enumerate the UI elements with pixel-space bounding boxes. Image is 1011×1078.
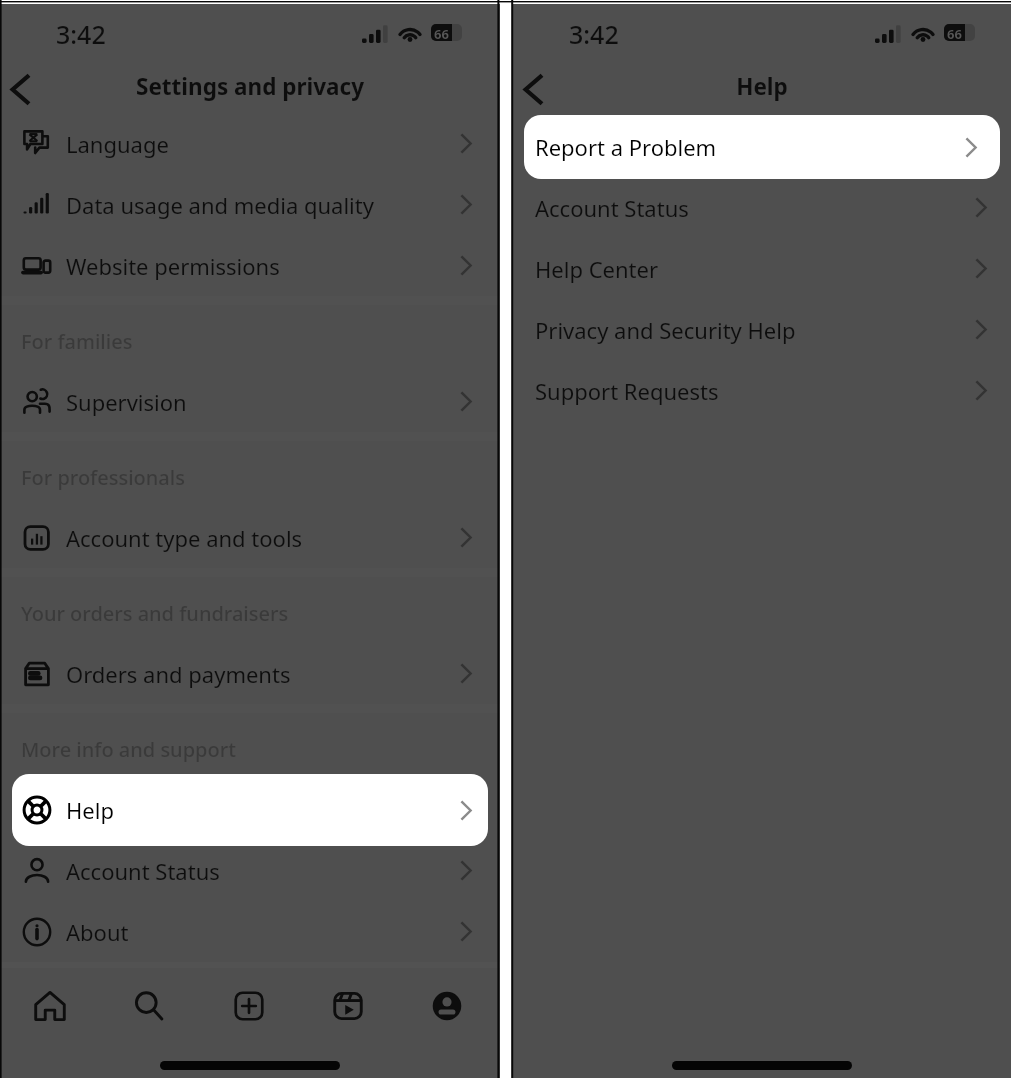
staticText: Language xyxy=(66,129,169,159)
staticText: Help xyxy=(513,71,1011,102)
button[interactable]: Orders and payments xyxy=(0,643,500,704)
button[interactable]: Search xyxy=(121,974,177,1038)
staticText: For professionals xyxy=(21,464,185,491)
staticText: Privacy and Security Help xyxy=(535,315,796,345)
button[interactable]: Report a Problem xyxy=(524,115,1000,179)
button[interactable]: Help Center xyxy=(513,238,1011,299)
staticText: Supervision xyxy=(66,387,187,417)
staticText: Orders and payments xyxy=(66,659,291,689)
button[interactable]: Back xyxy=(512,65,554,113)
button[interactable]: Help xyxy=(12,774,488,846)
staticText: 66 xyxy=(434,25,449,43)
staticText: For families xyxy=(21,328,133,355)
staticText: Settings and privacy xyxy=(0,71,500,102)
button[interactable]: Privacy and Security Help xyxy=(513,299,1011,360)
button[interactable]: Supervision xyxy=(0,371,500,432)
button[interactable]: Create xyxy=(221,974,277,1038)
button[interactable]: Language xyxy=(0,113,500,174)
button[interactable]: Reels xyxy=(320,974,376,1038)
button[interactable]: Back xyxy=(0,65,41,113)
button[interactable]: Data usage and media quality xyxy=(0,174,500,235)
staticText: Website permissions xyxy=(66,251,280,281)
staticText: Help xyxy=(66,795,114,825)
staticText: 66 xyxy=(947,25,962,43)
button[interactable]: About xyxy=(0,901,500,962)
button[interactable]: Home xyxy=(22,974,78,1038)
staticText: Account Status xyxy=(66,856,220,886)
staticText: About xyxy=(66,917,129,947)
staticText: 3:42 xyxy=(56,17,106,51)
button[interactable]: Account type and tools xyxy=(0,507,500,568)
button[interactable]: Website permissions xyxy=(0,235,500,296)
staticText: Help Center xyxy=(535,254,658,284)
staticText: Data usage and media quality xyxy=(66,190,374,220)
staticText: Your orders and fundraisers xyxy=(21,600,289,627)
button[interactable]: Support Requests xyxy=(513,360,1011,421)
staticText: More info and support xyxy=(21,736,236,763)
staticText: Support Requests xyxy=(535,376,719,406)
staticText: Report a Problem xyxy=(535,132,717,162)
button[interactable]: Profile xyxy=(419,974,475,1038)
staticText: Account type and tools xyxy=(66,523,303,553)
button[interactable]: Account Status xyxy=(513,177,1011,238)
button[interactable]: Account Status xyxy=(0,840,500,901)
staticText: Account Status xyxy=(535,193,689,223)
staticText: 3:42 xyxy=(569,17,619,51)
